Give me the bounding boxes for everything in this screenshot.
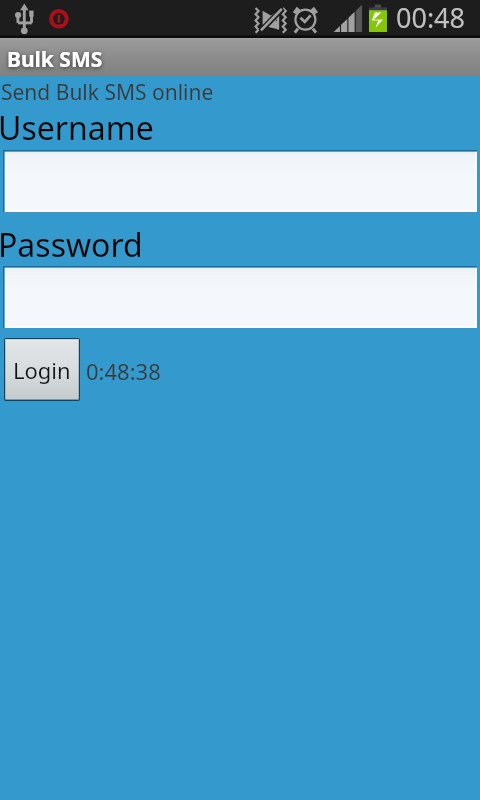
- staticText: Password: [0, 223, 143, 267]
- button[interactable]: Alarm set: [291, 4, 320, 35]
- staticText: 0:48:38: [86, 356, 161, 386]
- button[interactable]: USB connected: [13, 2, 36, 35]
- button[interactable]: Bulk SMS: [0, 38, 480, 76]
- button[interactable]: Do not disturb: [47, 7, 71, 31]
- button[interactable]: Username field: [3, 150, 477, 212]
- staticText: 00:48: [396, 0, 466, 36]
- button[interactable]: Password field: [3, 266, 477, 328]
- button[interactable]: Battery charging: [367, 3, 389, 34]
- staticText: Bulk SMS: [7, 45, 103, 74]
- button[interactable]: Login: [4, 338, 80, 401]
- staticText: Login: [13, 355, 71, 385]
- staticText: Send Bulk SMS online: [1, 78, 214, 107]
- button[interactable]: Signal strength: [332, 4, 363, 33]
- staticText: Username: [0, 106, 154, 150]
- button[interactable]: Vibrate off: [255, 8, 287, 32]
